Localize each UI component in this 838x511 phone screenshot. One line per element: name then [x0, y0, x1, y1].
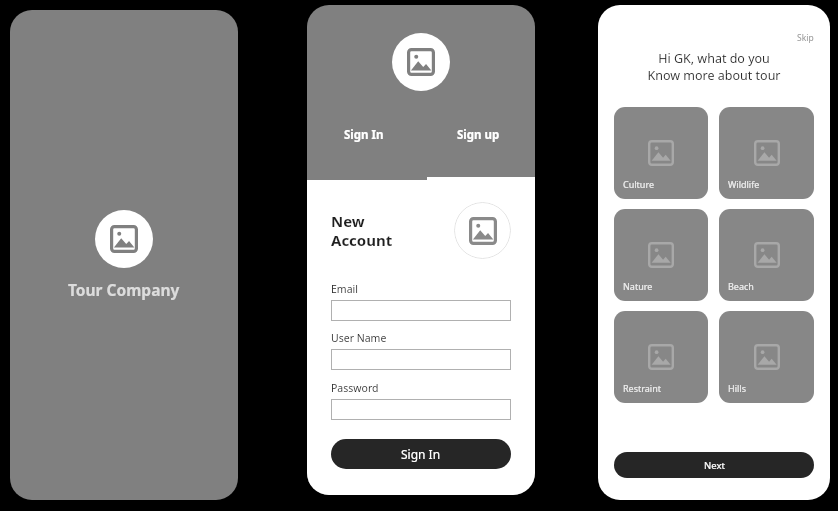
staticText: Hills	[728, 382, 746, 394]
staticText: Email	[331, 282, 358, 296]
button[interactable]: Sign up	[421, 123, 535, 147]
button[interactable]: Skip	[795, 31, 816, 45]
button[interactable]: Next	[614, 452, 814, 478]
staticText: Restraint	[623, 382, 661, 394]
button[interactable]	[331, 300, 511, 321]
button[interactable]: Restraint	[614, 311, 708, 403]
button[interactable]: Wildlife	[719, 107, 814, 199]
staticText: User Name	[331, 331, 387, 345]
staticText: Sign In	[401, 446, 441, 462]
button[interactable]: Sign In	[331, 439, 511, 469]
staticText: Wildlife	[728, 178, 760, 190]
button[interactable]: Nature	[614, 209, 708, 301]
button[interactable]: Sign In	[307, 123, 421, 147]
button[interactable]: Profile photo	[454, 202, 511, 259]
staticText: Password	[331, 381, 379, 395]
staticText: Sign In	[344, 127, 384, 143]
staticText: Tour Company	[68, 279, 180, 300]
button[interactable]	[331, 399, 511, 420]
button[interactable]: Beach	[719, 209, 814, 301]
button[interactable]	[331, 349, 511, 370]
staticText: Next	[704, 459, 725, 472]
button[interactable]: Hills	[719, 311, 814, 403]
staticText: Sign up	[457, 127, 500, 143]
staticText: Skip	[797, 32, 814, 44]
staticText: Culture	[623, 178, 654, 190]
staticText: New Account	[331, 211, 393, 250]
staticText: Beach	[728, 280, 754, 292]
staticText: Hi GK, what do you Know more about tour	[598, 50, 830, 84]
button[interactable]: Culture	[614, 107, 708, 199]
staticText: Nature	[623, 280, 653, 292]
